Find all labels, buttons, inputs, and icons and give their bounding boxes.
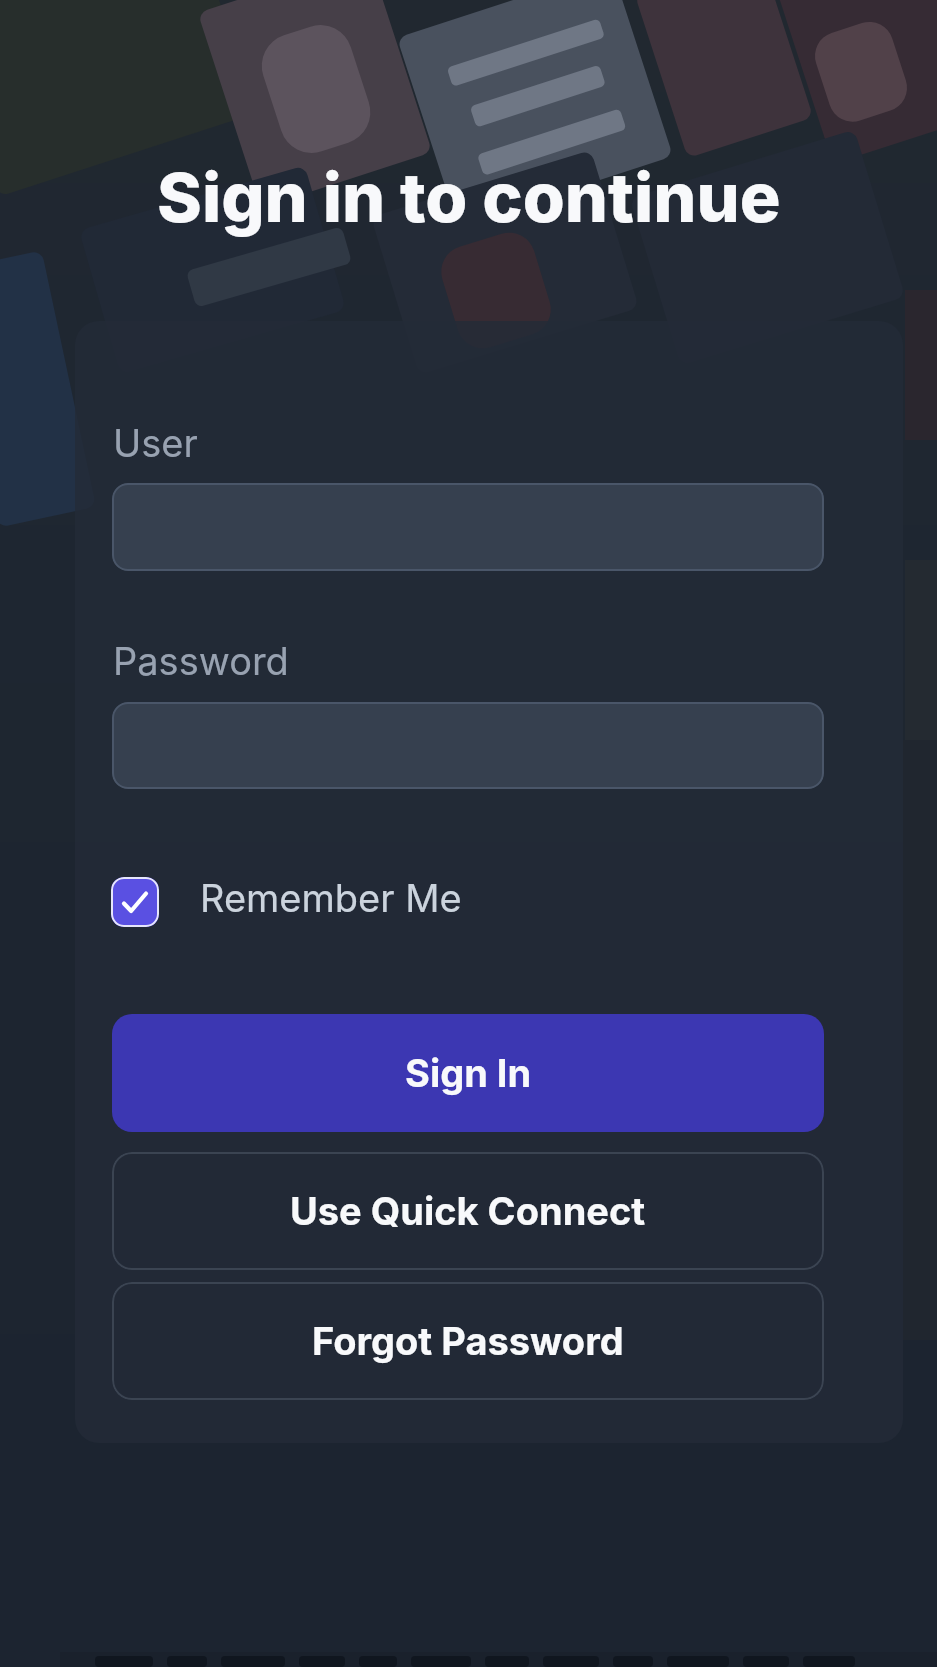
staticText: User [113, 420, 198, 466]
button[interactable]: Sign In [112, 1014, 824, 1132]
staticText: Remember Me [200, 875, 462, 921]
staticText: Use Quick Connect [290, 1188, 646, 1234]
button[interactable]: Forgot Password [112, 1282, 824, 1400]
button[interactable]: Use Quick Connect [112, 1152, 824, 1270]
button[interactable] [112, 702, 824, 789]
button[interactable] [112, 483, 824, 571]
button[interactable] [111, 877, 159, 927]
staticText: Password [113, 638, 289, 684]
staticText: Sign in to continue [157, 156, 781, 238]
staticText: Sign In [405, 1050, 532, 1096]
staticText: Forgot Password [312, 1318, 624, 1364]
